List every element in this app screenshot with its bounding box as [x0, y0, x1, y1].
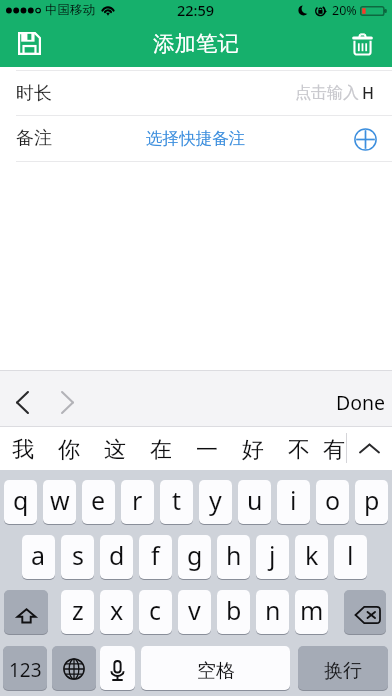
staticText: 有 [323, 436, 345, 464]
staticText: Done [336, 389, 386, 416]
staticText: p [364, 483, 380, 517]
button[interactable]: 这 [92, 426, 138, 470]
button[interactable]: m [295, 590, 328, 635]
button[interactable]: 空格 [141, 646, 290, 691]
button[interactable]: y [199, 480, 232, 525]
button[interactable]: p [355, 480, 388, 525]
staticText: q [13, 483, 29, 517]
button[interactable]: g [178, 535, 211, 580]
button[interactable]: n [256, 590, 289, 635]
staticText: 中国移动 [45, 2, 95, 18]
button[interactable]: o [316, 480, 349, 525]
staticText: 换行 [324, 659, 362, 683]
button[interactable]: s [61, 535, 94, 580]
button[interactable]: k [295, 535, 328, 580]
button[interactable]: j [256, 535, 289, 580]
button[interactable]: Add [349, 123, 381, 155]
staticText: 好 [242, 436, 264, 464]
button[interactable]: Voice input [100, 646, 135, 691]
staticText: y [209, 483, 222, 517]
staticText: m [300, 593, 324, 627]
button[interactable]: 换行 [298, 646, 388, 691]
button[interactable]: Save [0, 20, 58, 67]
staticText: l [347, 538, 354, 572]
staticText: z [72, 593, 84, 627]
button[interactable]: 我 [0, 426, 46, 470]
button[interactable]: r [121, 480, 154, 525]
staticText: 添加笔记 [153, 30, 239, 57]
staticText: 时长 [16, 82, 52, 105]
button[interactable]: l [334, 535, 367, 580]
staticText: b [226, 593, 242, 627]
staticText: 选择快捷备注 [146, 128, 245, 149]
button[interactable]: Expand candidates [346, 426, 392, 470]
button[interactable]: 备注 [0, 116, 392, 161]
staticText: r [132, 483, 143, 517]
button[interactable]: Done [322, 370, 392, 426]
button[interactable]: Backspace [344, 590, 386, 635]
staticText: 备注 [16, 127, 52, 150]
staticText: h [226, 538, 242, 572]
staticText: o [325, 483, 341, 517]
button[interactable]: Previous field [0, 370, 45, 426]
staticText: i [290, 483, 297, 517]
staticText: 在 [150, 436, 172, 464]
staticText: j [269, 538, 276, 572]
button[interactable]: 有 [322, 426, 346, 470]
staticText: c [149, 593, 162, 627]
staticText: 点击输入 [295, 83, 359, 103]
button[interactable]: t [160, 480, 193, 525]
staticText: 22:59 [177, 0, 215, 20]
button[interactable]: d [100, 535, 133, 580]
button[interactable]: 一 [184, 426, 230, 470]
button[interactable]: 不 [276, 426, 322, 470]
button[interactable]: q [4, 480, 37, 525]
staticText: e [91, 483, 106, 517]
staticText: 123 [9, 657, 42, 683]
staticText: d [109, 538, 125, 572]
staticText: 空格 [197, 659, 235, 683]
button[interactable]: 时长 [0, 71, 392, 115]
staticText: 20% [332, 2, 357, 19]
staticText: f [151, 538, 160, 572]
staticText: H [362, 82, 374, 104]
button[interactable]: 你 [46, 426, 92, 470]
button[interactable]: Shift [4, 590, 48, 635]
staticText: v [188, 593, 201, 627]
staticText: 我 [12, 436, 34, 464]
button[interactable]: w [43, 480, 76, 525]
button[interactable]: e [82, 480, 115, 525]
button[interactable]: z [61, 590, 94, 635]
button[interactable]: Delete [333, 20, 392, 67]
button[interactable]: Switch keyboard [52, 646, 96, 691]
button[interactable]: x [100, 590, 133, 635]
staticText: g [187, 538, 203, 572]
button[interactable]: h [217, 535, 250, 580]
button[interactable]: a [22, 535, 55, 580]
button[interactable]: u [238, 480, 271, 525]
button[interactable]: i [277, 480, 310, 525]
button[interactable]: 好 [230, 426, 276, 470]
staticText: a [31, 538, 46, 572]
button[interactable]: 123 [3, 646, 47, 691]
staticText: u [247, 483, 263, 517]
staticText: t [172, 483, 182, 517]
staticText: k [305, 538, 319, 572]
button[interactable]: Next field [45, 370, 90, 426]
staticText: 这 [104, 436, 126, 464]
button[interactable]: v [178, 590, 211, 635]
staticText: 不 [288, 436, 310, 464]
button[interactable]: 在 [138, 426, 184, 470]
staticText: w [50, 483, 70, 517]
button[interactable]: f [139, 535, 172, 580]
staticText: 你 [58, 436, 80, 464]
staticText: n [265, 593, 281, 627]
staticText: s [72, 538, 84, 572]
button[interactable]: b [217, 590, 250, 635]
staticText: x [110, 593, 124, 627]
button[interactable]: c [139, 590, 172, 635]
staticText: 一 [196, 436, 218, 464]
